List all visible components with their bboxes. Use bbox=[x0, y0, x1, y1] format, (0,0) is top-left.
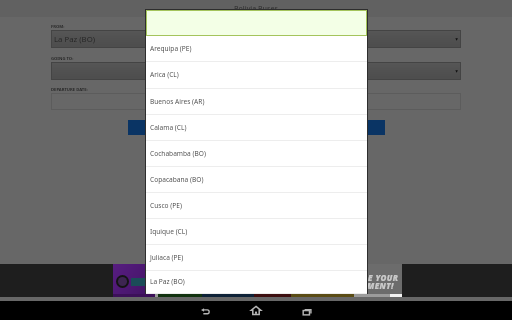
staticText: Arequipa (PE) bbox=[150, 44, 192, 53]
staticText: Juliaca (PE) bbox=[150, 253, 184, 262]
button[interactable] bbox=[128, 120, 385, 135]
button[interactable]: Recent apps bbox=[281, 301, 333, 320]
button[interactable]: Home bbox=[230, 301, 282, 320]
staticText: La Paz (BO) bbox=[54, 34, 96, 45]
button[interactable]: La Paz (BO) bbox=[146, 271, 367, 294]
button[interactable]: Back bbox=[179, 301, 231, 320]
staticText: Calama (CL) bbox=[150, 123, 187, 132]
button[interactable]: La Paz (BO) bbox=[51, 30, 461, 48]
button[interactable]: Cochabamba (BO) bbox=[146, 141, 367, 167]
staticText: DEPARTURE DATE: bbox=[51, 87, 88, 93]
button[interactable]: Arica (CL) bbox=[146, 62, 367, 89]
staticText: Buenos Aires (AR) bbox=[150, 97, 205, 106]
button[interactable]: Juliaca (PE) bbox=[146, 245, 367, 271]
staticText: FROM: bbox=[51, 24, 65, 30]
staticText: Iquique (CL) bbox=[150, 227, 188, 236]
button[interactable]: Iquique (CL) bbox=[146, 219, 367, 245]
button[interactable]: Cusco (PE) bbox=[146, 193, 367, 219]
button[interactable] bbox=[146, 10, 367, 36]
staticText: Cochabamba (BO) bbox=[150, 149, 206, 158]
staticText: Cusco (PE) bbox=[150, 201, 182, 210]
staticText: Copacabana (BO) bbox=[150, 175, 204, 184]
staticText: La Paz (BO) bbox=[150, 277, 185, 286]
staticText: E YOUR bbox=[368, 272, 399, 283]
button[interactable] bbox=[51, 93, 461, 110]
staticText: Bolivia Buses bbox=[234, 4, 278, 14]
staticText: GOING TO: bbox=[51, 56, 74, 62]
button[interactable] bbox=[51, 62, 461, 80]
staticText: Arica (CL) bbox=[150, 70, 179, 79]
button[interactable]: Buenos Aires (AR) bbox=[146, 89, 367, 115]
button[interactable]: Arequipa (PE) bbox=[146, 36, 367, 62]
button[interactable]: Calama (CL) bbox=[146, 115, 367, 141]
staticText: MENT! bbox=[367, 280, 394, 291]
button[interactable]: Copacabana (BO) bbox=[146, 167, 367, 193]
